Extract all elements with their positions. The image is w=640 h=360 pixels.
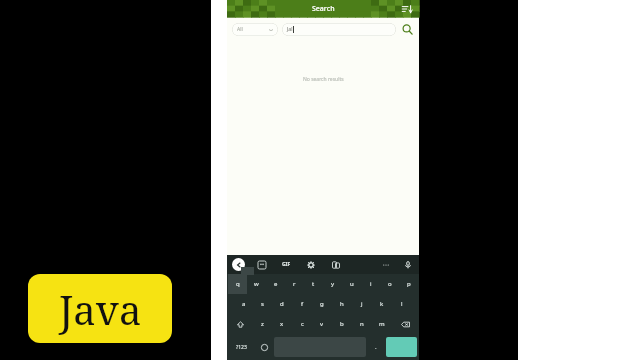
staticText: t [312,280,315,288]
staticText: Java [59,282,142,336]
button[interactable]: Settings [305,259,317,271]
button[interactable]: x [272,314,292,334]
staticText: x [280,320,284,328]
staticText: c [301,320,304,328]
staticText: e [274,280,278,288]
button[interactable]: v [312,314,332,334]
staticText: p [407,280,411,288]
staticText: v [320,320,324,328]
staticText: Search [312,4,335,14]
staticText: d [280,300,284,308]
staticText: m [379,320,385,328]
staticText: u [350,280,354,288]
staticText: GIF [282,261,291,268]
staticText: g [320,300,324,308]
staticText: s [261,300,264,308]
staticText: o [388,280,392,288]
staticText: ?123 [236,344,247,351]
staticText: a [242,300,246,308]
button[interactable]: Shift [228,314,253,334]
staticText: i [370,280,372,288]
button[interactable]: h [332,294,352,314]
staticText: No search results [303,76,344,83]
staticText: All [237,26,243,33]
button[interactable]: Stickers [256,259,268,271]
staticText: n [360,320,364,328]
button[interactable]: t [304,274,323,294]
button[interactable]: w [247,274,266,294]
staticText: f [301,300,304,308]
button[interactable]: Emoji [254,335,274,359]
button[interactable]: r [285,274,304,294]
button[interactable]: . [366,335,386,359]
staticText: z [261,320,264,328]
button[interactable]: z [253,314,272,334]
button[interactable]: g [312,294,332,314]
button[interactable]: b [332,314,352,334]
button[interactable]: a [234,294,253,314]
staticText: . [375,343,377,351]
button[interactable]: Sort [401,3,413,15]
staticText: q [236,280,240,288]
staticText: b [340,320,344,328]
button[interactable]: i [361,274,380,294]
staticText: r [293,280,296,288]
button[interactable]: All [232,23,278,36]
button[interactable]: Enter [386,337,417,357]
button[interactable]: Search [400,22,414,36]
button[interactable]: l [392,294,412,314]
button[interactable]: d [272,294,292,314]
button[interactable]: Voice input [402,259,414,271]
button[interactable]: j [352,294,372,314]
button[interactable]: Back [232,258,245,271]
button[interactable]: n [352,314,372,334]
staticText: j [361,300,363,308]
staticText: w [254,280,259,288]
button[interactable]: y [323,274,342,294]
button[interactable]: ?123 [229,335,254,359]
staticText: y [331,280,335,288]
button[interactable]: p [399,274,418,294]
button[interactable]: q [228,274,247,294]
staticText: Jal [287,26,293,33]
staticText: l [401,300,403,308]
button[interactable]: Java [28,274,172,343]
button[interactable]: e [266,274,285,294]
staticText: k [380,300,384,308]
button[interactable]: k [372,294,392,314]
button[interactable]: f [292,294,312,314]
button[interactable]: o [380,274,399,294]
button[interactable]: m [372,314,392,334]
button[interactable]: Jal [282,23,396,36]
button[interactable]: Search [227,0,419,17]
staticText: h [340,300,344,308]
button[interactable]: More options [380,259,392,271]
button[interactable]: Backspace [392,314,418,334]
button[interactable]: u [342,274,361,294]
button[interactable]: Clipboard [330,259,342,271]
button[interactable]: GIF [281,260,292,269]
button[interactable]: c [292,314,312,334]
button[interactable]: s [253,294,272,314]
